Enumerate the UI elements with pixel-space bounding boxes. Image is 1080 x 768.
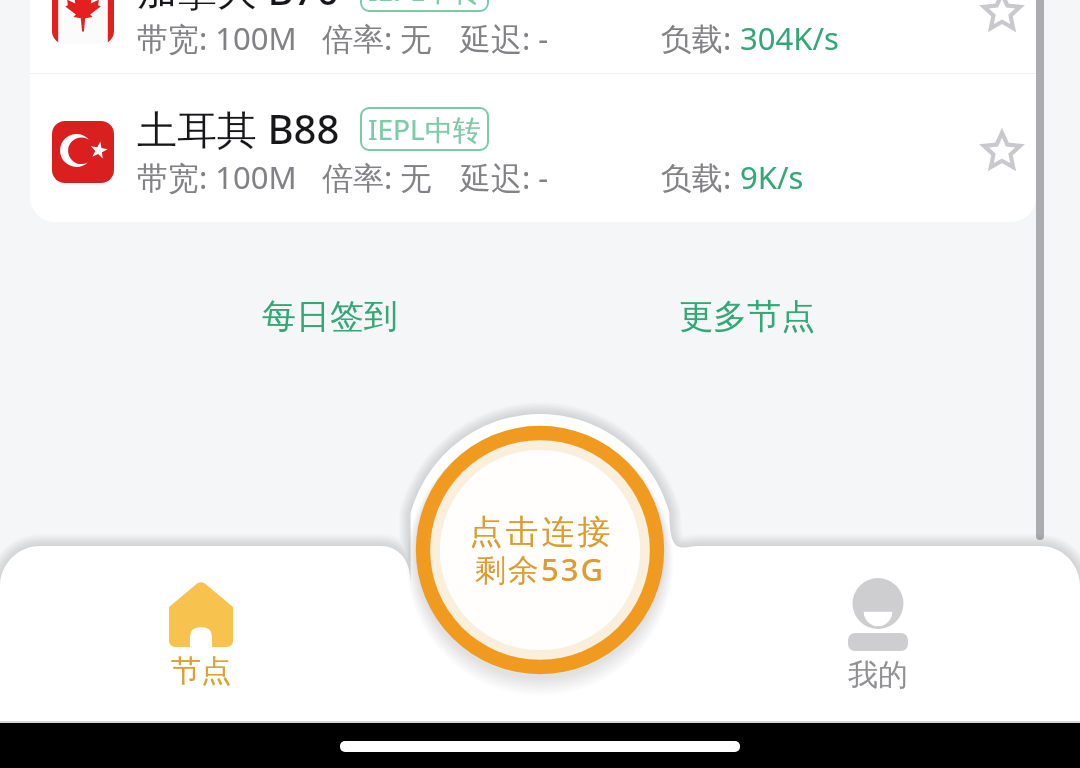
staticText: IEPL中转 xyxy=(368,0,481,9)
button[interactable]: Favourite xyxy=(972,0,1032,42)
staticText: 节点 xyxy=(171,652,231,690)
staticText: 304K/s xyxy=(740,17,839,59)
button[interactable]: 每日签到 xyxy=(256,289,404,344)
staticText: 土耳其 B88 xyxy=(137,101,340,156)
button[interactable]: 土耳其 B88 xyxy=(30,74,1036,212)
staticText: IEPL中转 xyxy=(368,110,481,148)
staticText: 延迟: - xyxy=(460,156,549,198)
staticText: 负载: xyxy=(661,17,740,59)
button[interactable]: 节点 xyxy=(162,581,240,690)
staticText: 带宽: 100M xyxy=(137,17,297,59)
staticText: 更多节点 xyxy=(679,295,815,338)
button[interactable]: 点击连接 xyxy=(410,420,670,680)
staticText: 延迟: - xyxy=(460,17,549,59)
button[interactable]: 加拿大 B70 xyxy=(30,0,1036,73)
staticText: 带宽: 100M xyxy=(137,156,297,198)
staticText: 剩余53G xyxy=(475,548,606,590)
staticText: 每日签到 xyxy=(262,295,398,338)
staticText: 我的 xyxy=(848,656,908,694)
staticText: 倍率: 无 xyxy=(322,17,432,59)
button[interactable]: Favourite xyxy=(972,121,1032,181)
staticText: 加拿大 B70 xyxy=(137,0,340,17)
staticText: 倍率: 无 xyxy=(322,156,432,198)
button[interactable]: 更多节点 xyxy=(673,289,821,344)
button[interactable]: 我的 xyxy=(839,578,917,694)
staticText: 负载: xyxy=(661,156,740,198)
staticText: 点击连接 xyxy=(468,511,612,553)
staticText: 9K/s xyxy=(740,156,804,198)
